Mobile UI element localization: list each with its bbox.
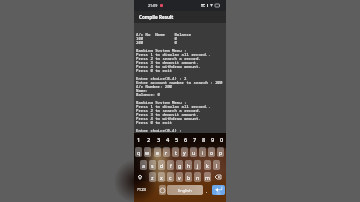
button[interactable]: 3 bbox=[154, 133, 163, 147]
staticText: e bbox=[156, 149, 159, 156]
button[interactable]: . bbox=[204, 185, 210, 195]
staticText: 200 0 bbox=[136, 40, 177, 44]
staticText: n bbox=[196, 174, 200, 181]
staticText: 1 bbox=[137, 136, 141, 144]
button[interactable]: 0 bbox=[217, 133, 226, 147]
button[interactable]: Emoji bbox=[159, 185, 166, 195]
staticText: h bbox=[187, 162, 191, 169]
button[interactable]: b bbox=[185, 172, 192, 182]
button[interactable]: g bbox=[176, 160, 183, 170]
button[interactable]: ?123 bbox=[135, 185, 148, 195]
staticText: v bbox=[178, 174, 181, 181]
staticText: x bbox=[160, 174, 163, 181]
staticText: d bbox=[160, 162, 164, 169]
staticText: t bbox=[175, 149, 177, 156]
staticText: A/c No Name Balance bbox=[136, 32, 192, 36]
staticText: Press 1 to display all record.. bbox=[136, 52, 211, 56]
staticText: Press 3 to deposit amount. bbox=[136, 112, 199, 116]
staticText: Balance: 0 bbox=[136, 92, 160, 96]
button[interactable]: w bbox=[144, 147, 151, 157]
staticText: 6 bbox=[184, 136, 188, 144]
staticText: u bbox=[192, 149, 196, 156]
button[interactable]: h bbox=[185, 160, 192, 170]
button[interactable]: o bbox=[208, 147, 215, 157]
staticText: Enter account number to search : 200 bbox=[136, 80, 223, 84]
button[interactable]: t bbox=[172, 147, 179, 157]
button[interactable]: e bbox=[154, 147, 161, 157]
button[interactable]: m bbox=[204, 172, 211, 182]
staticText: q bbox=[137, 149, 141, 156]
button[interactable]: l bbox=[213, 160, 220, 170]
staticText: y bbox=[183, 149, 186, 156]
button[interactable]: 8 bbox=[199, 133, 208, 147]
staticText: p bbox=[219, 149, 223, 156]
staticText: 0 bbox=[220, 136, 224, 144]
staticText: 2 bbox=[147, 136, 151, 144]
staticText: Name: bbox=[136, 88, 148, 92]
staticText: A/c Number: 200 bbox=[136, 84, 172, 88]
staticText: 5 bbox=[175, 136, 179, 144]
staticText: s bbox=[151, 162, 154, 169]
button[interactable]: z bbox=[149, 172, 156, 182]
staticText: Press 3 to deposit amount. bbox=[136, 60, 199, 64]
button[interactable]: n bbox=[194, 172, 201, 182]
button[interactable]: y bbox=[181, 147, 188, 157]
button[interactable]: r bbox=[163, 147, 170, 157]
staticText: b bbox=[187, 174, 191, 181]
button[interactable]: 4 bbox=[163, 133, 172, 147]
staticText: Press 1 to display all record.. bbox=[136, 104, 211, 108]
button[interactable]: p bbox=[217, 147, 224, 157]
staticText: w bbox=[145, 149, 150, 156]
button[interactable]: Shift bbox=[135, 172, 145, 182]
button[interactable]: 9 bbox=[208, 133, 217, 147]
button[interactable]: v bbox=[176, 172, 183, 182]
button[interactable]: x bbox=[158, 172, 165, 182]
button[interactable]: 6 bbox=[181, 133, 190, 147]
button[interactable]: English bbox=[167, 185, 203, 195]
button[interactable]: i bbox=[199, 147, 206, 157]
button[interactable]: Backspace bbox=[213, 172, 223, 182]
staticText: j bbox=[197, 162, 199, 169]
button[interactable]: q bbox=[135, 147, 142, 157]
staticText: English bbox=[178, 188, 192, 193]
staticText: g bbox=[178, 162, 182, 169]
staticText: Press 4 to withdraw amount. bbox=[136, 64, 201, 68]
staticText: r bbox=[165, 149, 168, 156]
button[interactable]: 1 bbox=[134, 133, 144, 147]
staticText: 21:09 bbox=[148, 3, 158, 8]
staticText: a bbox=[142, 162, 145, 169]
staticText: Compile Result bbox=[139, 14, 174, 20]
button[interactable]: Enter bbox=[212, 185, 225, 195]
staticText: 3 bbox=[157, 136, 161, 144]
staticText: Press 2 to search a record. bbox=[136, 56, 201, 60]
button[interactable]: d bbox=[158, 160, 165, 170]
button[interactable]: j bbox=[194, 160, 201, 170]
staticText: 7 bbox=[193, 136, 197, 144]
staticText: 4 bbox=[166, 136, 170, 144]
staticText: Press 4 to withdraw amount. bbox=[136, 116, 201, 120]
button[interactable]: 7 bbox=[190, 133, 199, 147]
staticText: o bbox=[210, 149, 214, 156]
button[interactable]: 5 bbox=[172, 133, 181, 147]
staticText: m bbox=[205, 174, 210, 181]
staticText: Banking System Menu : bbox=[136, 100, 187, 104]
staticText: Press 0 to exit bbox=[136, 68, 172, 72]
staticText: Enter choice(0-4) : bbox=[136, 128, 182, 132]
staticText: Press 2 to search a record. bbox=[136, 108, 201, 112]
staticText: k bbox=[206, 162, 209, 169]
staticText: z bbox=[151, 174, 154, 181]
staticText: 9 bbox=[211, 136, 215, 144]
button[interactable]: a bbox=[140, 160, 147, 170]
staticText: ?123 bbox=[137, 187, 147, 193]
button[interactable]: u bbox=[190, 147, 197, 157]
staticText: i bbox=[202, 149, 204, 156]
staticText: c bbox=[169, 174, 172, 181]
button[interactable]: 2 bbox=[144, 133, 154, 147]
button[interactable]: k bbox=[204, 160, 211, 170]
button[interactable]: c bbox=[167, 172, 174, 182]
staticText: Banking System Menu : bbox=[136, 48, 187, 52]
staticText: 8 bbox=[202, 136, 206, 144]
staticText: 100 0 bbox=[136, 36, 177, 40]
button[interactable]: f bbox=[167, 160, 174, 170]
button[interactable]: s bbox=[149, 160, 156, 170]
